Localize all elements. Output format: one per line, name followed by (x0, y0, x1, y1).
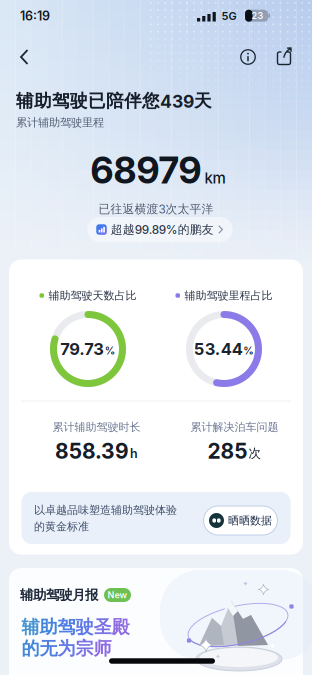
staticText: 以卓越品味塑造辅助驾驶体验 (34, 503, 177, 517)
staticText: 无 (39, 637, 57, 660)
staticText: % (243, 344, 254, 357)
staticText: 辅 (21, 616, 39, 638)
staticText: 驾 (57, 616, 75, 638)
staticText: 53.44 (194, 339, 243, 359)
staticText: 的 (21, 637, 39, 660)
staticText: 79.73 (60, 339, 104, 359)
staticText: 累计辅助驾驶时长 (52, 420, 140, 434)
staticText: 师 (93, 637, 111, 660)
button[interactable]: Back (15, 47, 35, 67)
button[interactable]: 晒晒数据 (203, 506, 277, 535)
staticText: 285 (207, 438, 247, 463)
staticText: 已往返横渡3次太平洋 (98, 202, 213, 216)
staticText: 的黄金标准 (34, 520, 89, 533)
staticText: 5G (221, 9, 236, 22)
button[interactable]: Share (275, 46, 294, 65)
staticText: 辅助驾驶里程占比 (184, 289, 272, 302)
staticText: 23 (251, 10, 263, 21)
staticText: 超越99.89%的鹏友 (111, 222, 214, 237)
staticText: 16:19 (20, 9, 50, 23)
staticText: 辅助驾驶天数占比 (48, 289, 136, 302)
staticText: 累计辅助驾驶里程 (16, 116, 104, 129)
staticText: 宗 (75, 637, 93, 660)
staticText: 辅助驾驶月报 (20, 587, 98, 603)
staticText: 68979 (90, 148, 201, 192)
button[interactable]: 辅助驾驶月报 (9, 568, 303, 675)
staticText: km (204, 169, 225, 187)
button[interactable]: 超越99.89%的鹏友 (87, 217, 233, 242)
staticText: % (105, 344, 116, 357)
staticText: 助 (39, 616, 57, 638)
staticText: New (107, 590, 127, 600)
staticText: h (130, 446, 138, 461)
staticText: 次 (248, 445, 261, 461)
staticText: 累计解决泊车问题 (190, 420, 278, 434)
staticText: 殿 (111, 616, 129, 638)
staticText: 858.39 (55, 438, 129, 463)
staticText: 驶 (75, 616, 93, 638)
staticText: 圣 (93, 616, 111, 638)
staticText: 为 (57, 637, 75, 660)
staticText: 晒晒数据 (228, 514, 272, 527)
button[interactable]: Info (237, 46, 259, 68)
staticText: 辅助驾驶已陪伴您439天 (16, 90, 212, 112)
